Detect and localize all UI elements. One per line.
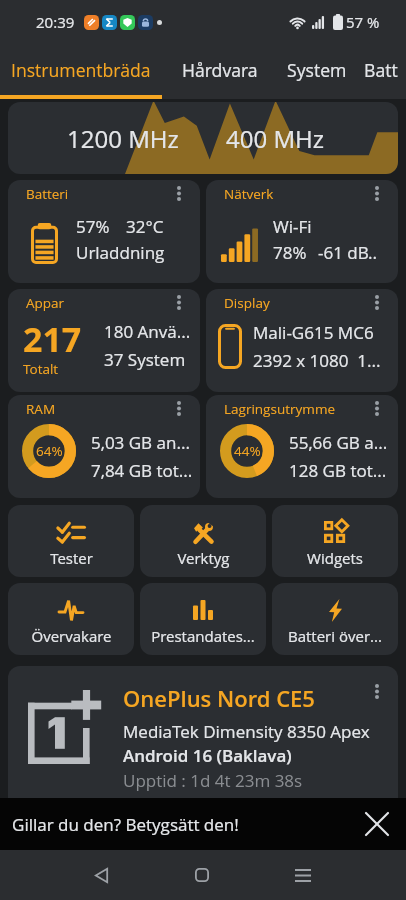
staticText: 78%	[273, 241, 307, 264]
staticText: Totalt	[23, 360, 59, 378]
button[interactable]: Batteri över...	[272, 583, 398, 655]
staticText: 44%	[234, 442, 261, 460]
staticText: Urladdning	[76, 241, 165, 264]
button[interactable]: Övervakare	[8, 583, 134, 655]
staticText: 217	[23, 316, 82, 362]
staticText: Hårdvara	[182, 58, 258, 82]
button[interactable]: RAM	[8, 395, 200, 498]
staticText: Lagringsutrymme	[224, 400, 336, 418]
staticText: 37 System	[104, 348, 186, 371]
staticText: Övervakare	[31, 626, 112, 646]
button[interactable]: 1200 MHz	[8, 102, 398, 174]
button[interactable]: Stäng	[360, 807, 394, 841]
staticText: Prestandates...	[151, 626, 255, 646]
staticText: Batteri över...	[288, 626, 382, 646]
button[interactable]: Tillbaka	[51, 850, 151, 900]
button[interactable]: OnePlus Nord CE5	[8, 666, 398, 826]
button[interactable]: Senaste appar	[253, 850, 353, 900]
staticText: Nätverk	[224, 185, 274, 203]
staticText: Tester	[50, 548, 93, 568]
button[interactable]: Lagringsutrymme	[206, 395, 398, 498]
button[interactable]: Hem	[152, 850, 252, 900]
button[interactable]: Widgets	[272, 505, 398, 577]
staticText: Djup sömn: 15t 9m 54s (53%)	[123, 794, 354, 817]
staticText: Batt	[364, 58, 398, 82]
button[interactable]: Hårdvara	[162, 45, 277, 99]
button[interactable]: Instrumentbräda	[0, 45, 162, 99]
staticText: 2392 x 1080 1...	[253, 349, 381, 372]
staticText: Appar	[26, 294, 65, 312]
staticText: 55,66 GB a...	[289, 431, 388, 454]
staticText: OnePlus Nord CE5	[123, 683, 315, 713]
button[interactable]: Fler alternativ	[367, 681, 387, 701]
staticText: -61 dB..	[318, 241, 378, 264]
button[interactable]: Gillar du den? Betygsätt den!	[0, 798, 406, 850]
staticText: Widgets	[307, 548, 363, 568]
staticText: 128 GB tot...	[289, 459, 387, 482]
staticText: MediaTek Dimensity 8350 Apex	[123, 720, 370, 743]
staticText: 64%	[36, 442, 63, 460]
staticText: System	[287, 58, 347, 82]
button[interactable]: Nätverk	[206, 180, 398, 283]
button[interactable]: Fler alternativ	[367, 292, 387, 312]
button[interactable]: Fler alternativ	[169, 292, 189, 312]
staticText: 57%	[76, 215, 110, 238]
button[interactable]: Verktyg	[140, 505, 266, 577]
button[interactable]: Batteri	[8, 180, 200, 283]
button[interactable]: Fler alternativ	[367, 183, 387, 203]
button[interactable]: Appar	[8, 289, 200, 392]
button[interactable]: Batt	[356, 45, 406, 99]
button[interactable]: Fler alternativ	[169, 398, 189, 418]
button[interactable]: Fler alternativ	[169, 183, 189, 203]
staticText: Upptid : 1d 4t 23m 38s	[123, 769, 303, 792]
staticText: 20:39	[36, 12, 75, 32]
button[interactable]: Tester	[8, 505, 134, 577]
button[interactable]: Prestandates...	[140, 583, 266, 655]
staticText: 5,03 GB an...	[91, 431, 191, 454]
staticText: 1200 MHz	[67, 122, 179, 155]
staticText: 57 %	[346, 12, 380, 32]
staticText: Instrumentbräda	[11, 58, 151, 82]
staticText: Gillar du den? Betygsätt den!	[12, 813, 239, 836]
staticText: Android 16 (Baklava)	[123, 744, 292, 767]
staticText: 400 MHz	[226, 122, 325, 155]
staticText: Batteri	[26, 185, 69, 203]
staticText: 7,84 GB tot...	[91, 459, 193, 482]
staticText: Display	[224, 294, 270, 312]
staticText: Wi-Fi	[273, 215, 312, 238]
staticText: 32°C	[126, 215, 164, 238]
staticText: 180 Anvä...	[104, 320, 191, 343]
staticText: Mali-G615 MC6	[253, 321, 374, 344]
staticText: RAM	[26, 400, 56, 418]
button[interactable]: System	[277, 45, 356, 99]
button[interactable]: Display	[206, 289, 398, 392]
staticText: Verktyg	[177, 548, 230, 568]
button[interactable]: Fler alternativ	[367, 398, 387, 418]
